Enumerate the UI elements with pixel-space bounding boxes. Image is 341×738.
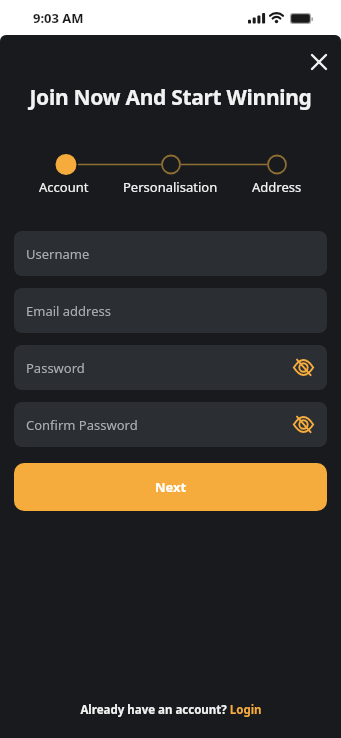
button[interactable]: Next xyxy=(14,463,327,511)
staticText: Join Now And Start Winning xyxy=(0,83,341,112)
staticText: Password xyxy=(26,359,85,377)
button[interactable] xyxy=(305,48,333,76)
button[interactable]: Email address xyxy=(14,288,327,333)
button[interactable]: Password xyxy=(14,345,327,390)
button[interactable]: Confirm Password xyxy=(14,402,327,447)
staticText: Personalisation xyxy=(123,178,218,196)
staticText: Next xyxy=(155,478,187,496)
button[interactable]: Username xyxy=(14,231,327,276)
staticText: Username xyxy=(26,245,90,263)
staticText: Account xyxy=(39,178,89,196)
staticText: Email address xyxy=(26,302,111,320)
button[interactable]: Already have an account? Login xyxy=(0,698,341,722)
staticText: Already have an account? Login xyxy=(80,702,262,718)
staticText: Address xyxy=(252,178,302,196)
staticText: Confirm Password xyxy=(26,416,138,434)
staticText: 9:03 AM xyxy=(33,9,84,27)
